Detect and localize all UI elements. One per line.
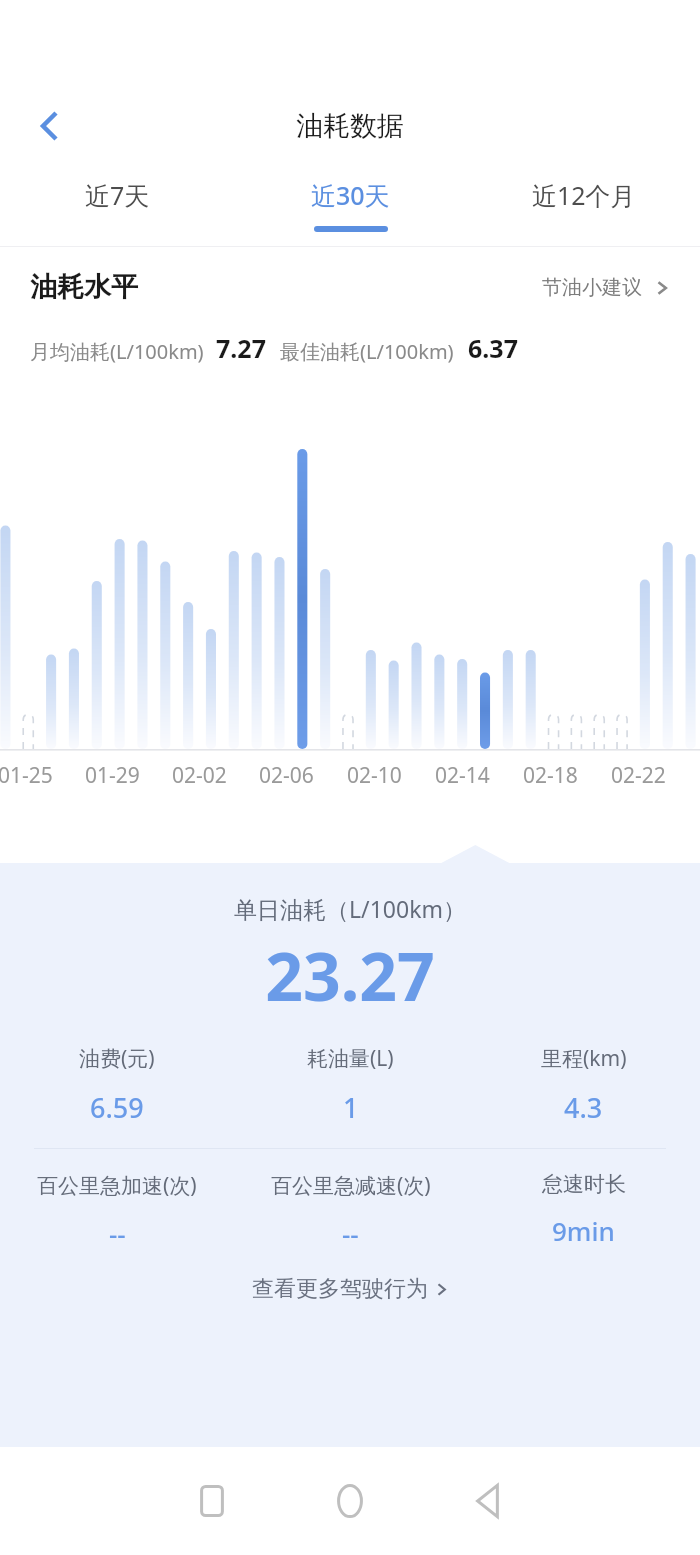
staticText: 近30天 xyxy=(311,178,390,212)
staticText: 9min xyxy=(552,1213,615,1248)
staticText: 4.3 xyxy=(564,1089,603,1126)
staticText: 02-14 xyxy=(435,761,490,790)
staticText: 02-18 xyxy=(523,761,578,790)
staticText: 01-29 xyxy=(85,761,140,790)
staticText: 耗油量(L) xyxy=(307,1044,394,1073)
staticText: 月均油耗(L/100km) xyxy=(30,338,204,365)
button[interactable]: 查看更多驾驶行为 xyxy=(0,1275,700,1303)
staticText: 02-10 xyxy=(347,761,402,790)
button[interactable]: Recents xyxy=(186,1475,238,1527)
staticText: 01-25 xyxy=(0,761,53,790)
button[interactable]: 近12个月 xyxy=(467,164,700,226)
staticText: 02-22 xyxy=(611,761,666,790)
staticText: 节油小建议 xyxy=(542,275,642,300)
staticText: 近7天 xyxy=(85,178,150,212)
staticText: -- xyxy=(109,1216,126,1251)
staticText: 里程(km) xyxy=(541,1044,627,1073)
staticText: 油费(元) xyxy=(79,1044,155,1073)
staticText: 23.27 xyxy=(0,930,700,1020)
staticText: 百公里急加速(次) xyxy=(37,1171,197,1200)
staticText: 油耗水平 xyxy=(30,270,138,304)
staticText: 查看更多驾驶行为 xyxy=(252,1275,428,1303)
staticText: -- xyxy=(342,1216,359,1251)
staticText: 百公里急减速(次) xyxy=(271,1171,431,1200)
staticText: 油耗数据 xyxy=(296,109,404,143)
button[interactable]: 节油小建议 xyxy=(538,271,674,304)
staticText: 02-02 xyxy=(172,761,227,790)
staticText: 1 xyxy=(343,1089,359,1126)
button[interactable]: 近30天 xyxy=(234,164,467,232)
staticText: 02-06 xyxy=(259,761,314,790)
staticText: 单日油耗（L/100km） xyxy=(0,893,700,924)
button[interactable]: Back xyxy=(462,1475,514,1527)
staticText: 近12个月 xyxy=(532,178,636,212)
staticText: 6.37 xyxy=(468,331,518,365)
button[interactable]: Home xyxy=(324,1475,376,1527)
staticText: 6.59 xyxy=(90,1089,144,1126)
staticText: 怠速时长 xyxy=(542,1171,626,1197)
staticText: 最佳油耗(L/100km) xyxy=(280,338,454,365)
button[interactable]: Back xyxy=(22,99,76,153)
staticText: 7.27 xyxy=(216,331,266,365)
button[interactable]: 近7天 xyxy=(0,164,234,226)
